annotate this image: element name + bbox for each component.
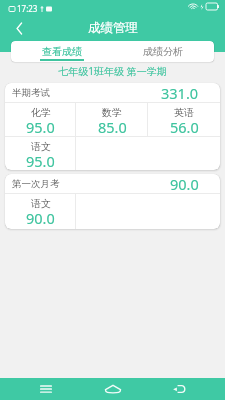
staticText: 语文: [31, 140, 51, 153]
staticText: 90.0: [170, 174, 199, 193]
staticText: 17:23: [17, 3, 38, 14]
staticText: 查看成绩: [42, 45, 82, 58]
staticText: 第一次月考: [12, 178, 60, 190]
staticText: 半期考试: [12, 87, 50, 99]
button[interactable]: 查看成绩: [11, 41, 112, 62]
button[interactable]: 第一次月考: [5, 174, 220, 229]
staticText: 331.0: [161, 83, 199, 102]
button[interactable]: Menu: [12, 378, 79, 400]
button[interactable]: Back: [0, 14, 38, 42]
staticText: 56.0: [170, 117, 199, 137]
button[interactable]: 半期考试: [5, 83, 220, 170]
staticText: 数学: [102, 106, 122, 119]
button[interactable]: Home: [79, 378, 146, 400]
staticText: 成绩分析: [143, 45, 183, 58]
staticText: 95.0: [26, 151, 55, 170]
staticText: 85.0: [98, 117, 127, 137]
staticText: 95.0: [26, 117, 55, 137]
staticText: 化学: [31, 106, 51, 119]
staticText: 七年级1班年级 第一学期: [0, 64, 225, 78]
button[interactable]: Back: [146, 378, 213, 400]
button[interactable]: 成绩分析: [112, 41, 214, 62]
staticText: 语文: [31, 197, 51, 210]
staticText: 90.0: [26, 208, 55, 228]
staticText: 成绩管理: [88, 20, 138, 36]
staticText: 英语: [174, 106, 194, 119]
